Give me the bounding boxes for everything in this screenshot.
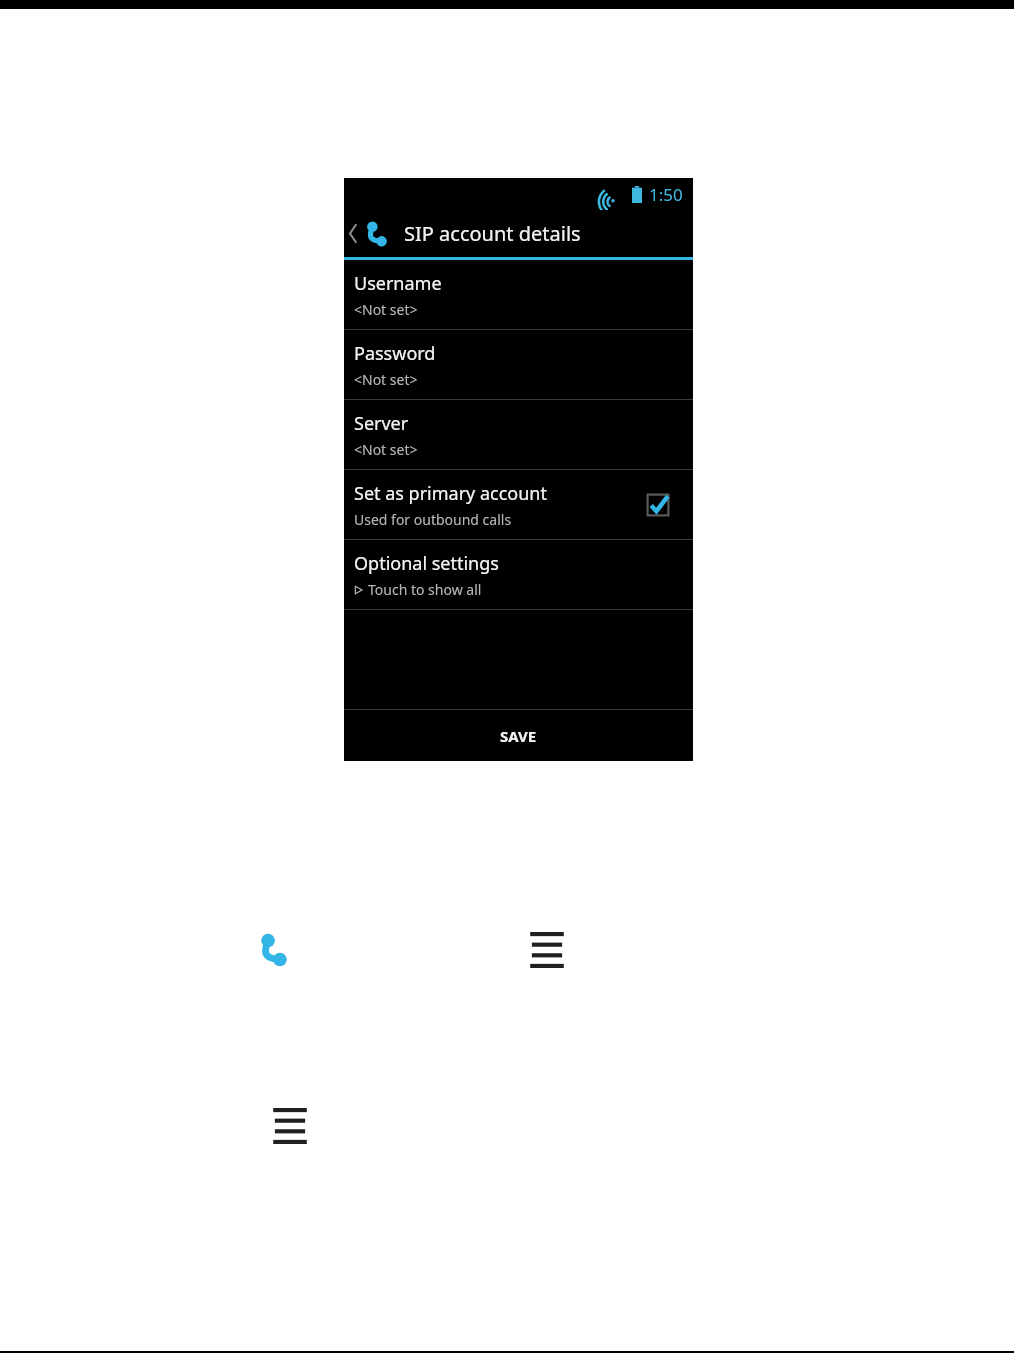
button[interactable]: Server — [344, 400, 693, 469]
staticText: SAVE — [500, 726, 537, 746]
staticText: Used for outbound calls — [354, 510, 512, 529]
button[interactable]: Set as primary account — [344, 470, 693, 539]
button[interactable]: SIP account details — [344, 210, 693, 257]
staticText: Set as primary account — [354, 481, 547, 506]
staticText: Password — [354, 341, 436, 366]
staticText: 1:50 — [649, 183, 683, 206]
button[interactable]: Optional settings — [344, 540, 693, 609]
staticText: Optional settings — [354, 551, 499, 576]
button[interactable]: Menu — [269, 1108, 311, 1144]
staticText: Touch to show all — [368, 580, 482, 599]
staticText: Username — [354, 271, 442, 296]
staticText: SIP account details — [404, 220, 581, 247]
button[interactable]: SAVE — [344, 710, 693, 761]
button[interactable]: Phone — [252, 928, 296, 972]
button[interactable]: Password — [344, 330, 693, 399]
button[interactable]: Menu — [526, 932, 568, 968]
staticText: Server — [354, 411, 409, 436]
staticText: <Not set> — [354, 370, 418, 389]
button[interactable]: Username — [344, 260, 693, 329]
staticText: <Not set> — [354, 300, 418, 319]
staticText: <Not set> — [354, 440, 418, 459]
